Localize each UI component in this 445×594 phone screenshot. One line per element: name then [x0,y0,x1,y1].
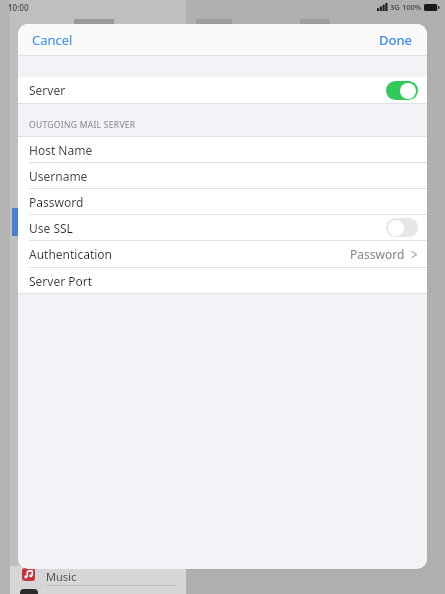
staticText: Host Name [29,142,93,158]
button[interactable]: On [386,81,418,100]
button[interactable]: Use SSL [18,215,427,240]
button[interactable]: Server Port [18,268,427,293]
staticText: 100% [402,2,422,12]
button[interactable]: Done [371,26,421,54]
staticText: Cancel [32,31,73,49]
other: More [411,249,418,260]
staticText: 3G [390,2,400,12]
staticText: Password [29,194,84,210]
button[interactable]: Username [18,163,427,188]
button[interactable]: Password [18,189,427,214]
button[interactable]: Host Name [18,137,427,162]
staticText: Server [29,82,386,98]
staticText: Server Port [29,273,93,289]
button[interactable]: Off [386,218,418,237]
staticText: Password [350,246,405,262]
button[interactable]: Authentication [18,241,427,267]
staticText: Authentication [29,246,350,262]
button[interactable]: Cancel [24,26,81,54]
staticText: OUTGOING MAIL SERVER [29,119,136,131]
staticText: Done [379,31,413,49]
button[interactable]: Server [18,77,427,103]
staticText: Username [29,168,88,184]
staticText: Use SSL [29,220,386,236]
staticText: Music [46,569,77,584]
staticText: 10:00 [8,2,29,13]
